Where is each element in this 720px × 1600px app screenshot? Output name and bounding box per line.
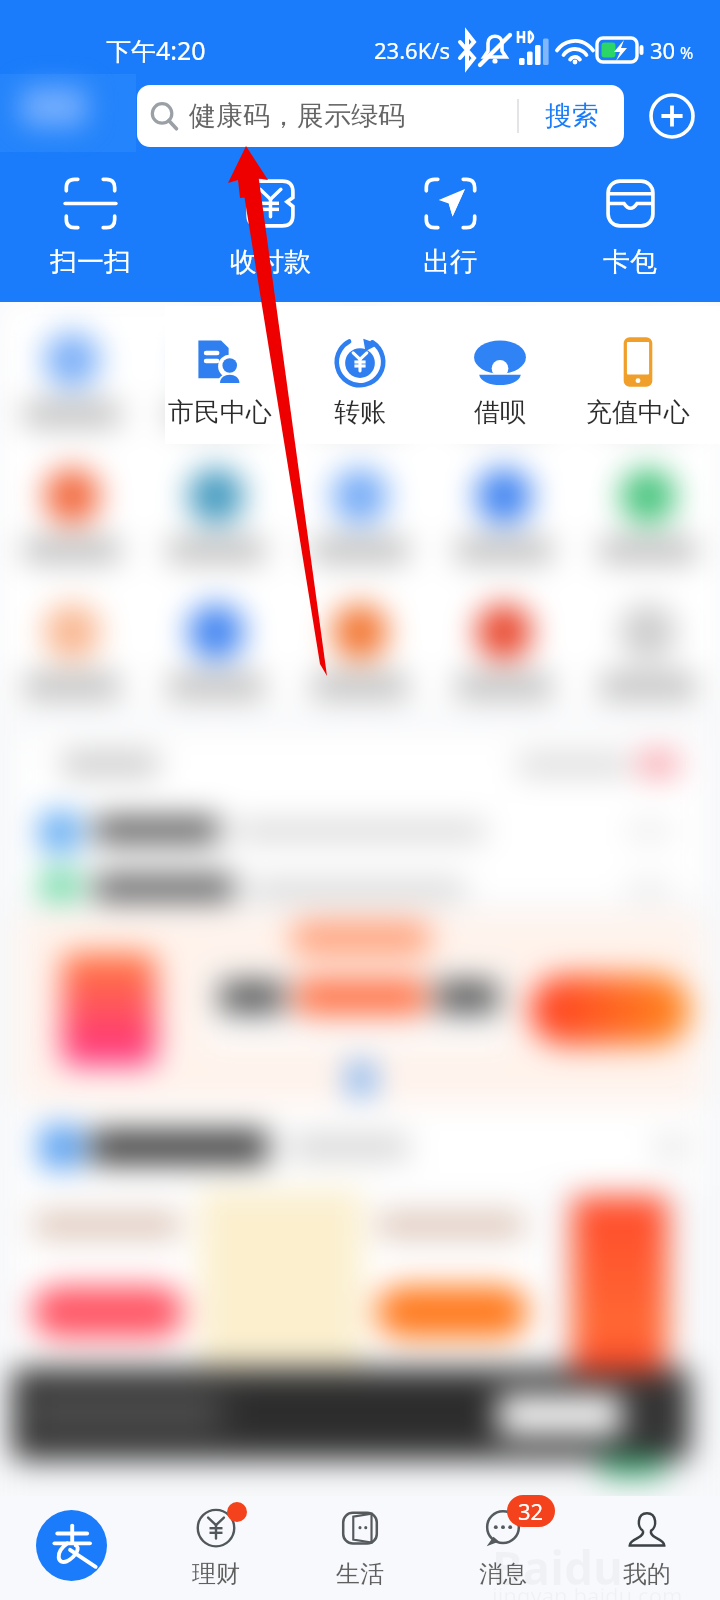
button[interactable]: 卡包	[555, 174, 705, 279]
button[interactable]: 出行	[375, 174, 525, 279]
button[interactable]: 32	[443, 1496, 563, 1600]
staticText: jingyan.baidu.com	[492, 1580, 683, 1600]
button[interactable]: 支付宝 首页	[33, 1507, 109, 1583]
staticText: 理财	[192, 1559, 240, 1589]
staticText: 充值中心	[586, 396, 690, 429]
button[interactable]	[0, 446, 144, 562]
button[interactable]: 理财	[156, 1496, 276, 1600]
staticText: 健康码，展示绿码	[189, 99, 405, 133]
staticText: 收付款	[230, 245, 311, 279]
staticText: 市民中心	[168, 396, 272, 429]
staticText: 下午4:20	[106, 33, 206, 67]
button[interactable]	[144, 582, 288, 698]
staticText: 23.6K/s	[374, 35, 450, 65]
staticText: 生活	[336, 1559, 384, 1589]
button[interactable]: 借呗	[430, 306, 570, 444]
button[interactable]: 扫一扫	[15, 174, 165, 279]
staticText: 扫一扫	[50, 245, 131, 279]
staticText: 消息	[479, 1559, 527, 1589]
button[interactable]	[576, 310, 720, 426]
button[interactable]	[0, 582, 144, 698]
staticText: 30	[650, 35, 676, 65]
button[interactable]	[576, 582, 720, 698]
button[interactable]	[432, 310, 576, 426]
button[interactable]: Add	[647, 91, 697, 141]
button[interactable]	[288, 446, 432, 562]
staticText: Baidu	[492, 1536, 623, 1599]
button[interactable]	[432, 446, 576, 562]
staticText: 32	[518, 1496, 544, 1526]
button[interactable]: 收付款	[195, 174, 345, 279]
staticText: 出行	[423, 245, 477, 279]
button[interactable]	[576, 446, 720, 562]
staticText: %	[680, 42, 694, 64]
button[interactable]: 转账	[290, 306, 430, 444]
button[interactable]: 我的	[587, 1496, 707, 1600]
button[interactable]	[288, 310, 432, 426]
staticText: 转账	[334, 396, 386, 429]
staticText: 搜索	[545, 99, 599, 133]
button[interactable]: 生活	[300, 1496, 420, 1600]
button[interactable]: 健康码，展示绿码	[137, 85, 624, 147]
button[interactable]	[432, 582, 576, 698]
button[interactable]: 充值中心	[568, 306, 708, 444]
button[interactable]	[0, 310, 144, 426]
button[interactable]	[288, 582, 432, 698]
button[interactable]: 市民中心	[150, 306, 290, 444]
staticText: 卡包	[603, 245, 657, 279]
button[interactable]	[144, 446, 288, 562]
staticText: 我的	[623, 1559, 671, 1589]
button[interactable]	[144, 310, 288, 426]
staticText: 借呗	[474, 396, 526, 429]
